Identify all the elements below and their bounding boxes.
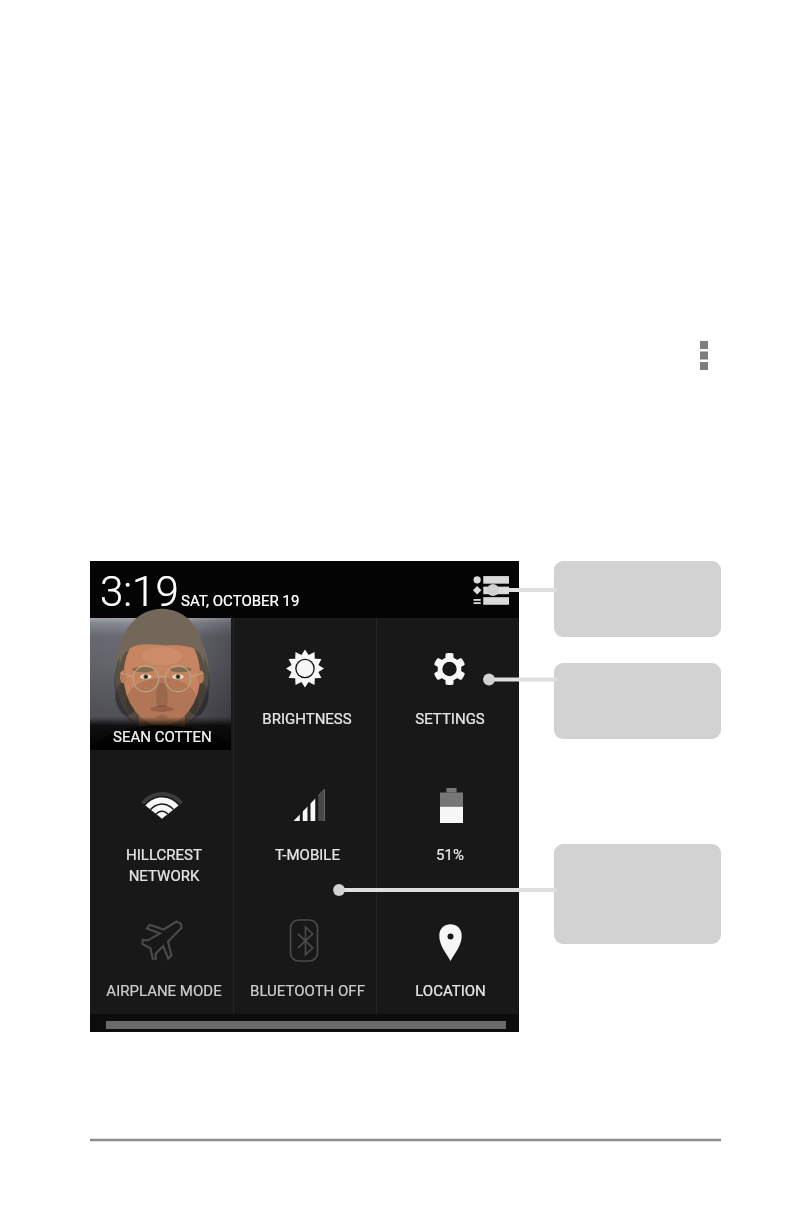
- button[interactable]: HILLCREST NETWORK: [90, 754, 233, 890]
- button[interactable]: SETTINGS: [377, 618, 519, 754]
- button[interactable]: T-MOBILE: [234, 754, 376, 890]
- staticText: SAT, OCTOBER 19: [181, 592, 300, 610]
- button[interactable]: BRIGHTNESS: [234, 618, 376, 754]
- staticText: HILLCREST NETWORK: [126, 846, 202, 885]
- staticText: LOCATION: [415, 982, 486, 1000]
- staticText: SEAN COTTEN: [113, 728, 212, 746]
- button[interactable]: AIRPLANE MODE: [90, 890, 233, 1014]
- button[interactable]: Quick settings: [468, 568, 514, 612]
- button[interactable]: Annotation two: [554, 663, 721, 739]
- button[interactable]: More options: [692, 332, 716, 376]
- staticText: SETTINGS: [415, 710, 485, 728]
- button[interactable]: LOCATION: [377, 890, 519, 1014]
- staticText: AIRPLANE MODE: [106, 982, 222, 1000]
- button[interactable]: SEAN COTTEN: [90, 618, 233, 754]
- staticText: T-MOBILE: [275, 846, 340, 864]
- staticText: 3:19: [100, 567, 179, 616]
- staticText: 51%: [436, 846, 464, 864]
- button[interactable]: BLUETOOTH OFF: [234, 890, 376, 1014]
- button[interactable]: Annotation one: [554, 561, 721, 637]
- staticText: BLUETOOTH OFF: [250, 982, 365, 1000]
- staticText: BRIGHTNESS: [262, 710, 352, 728]
- button[interactable]: 51%: [377, 754, 519, 890]
